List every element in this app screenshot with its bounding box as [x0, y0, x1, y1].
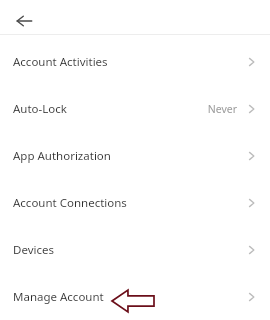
- staticText: Never: [207, 102, 237, 116]
- staticText: App Authorization: [13, 148, 111, 164]
- button[interactable]: App Authorization: [0, 132, 270, 179]
- staticText: Account Connections: [13, 195, 127, 211]
- button[interactable]: Account Connections: [0, 179, 270, 226]
- staticText: Account Activities: [13, 54, 108, 70]
- button[interactable]: Back: [6, 4, 42, 38]
- staticText: Devices: [13, 242, 54, 258]
- button[interactable]: Auto-Lock: [0, 85, 270, 132]
- staticText: Auto-Lock: [13, 101, 67, 117]
- button[interactable]: Manage Account: [0, 273, 270, 320]
- button[interactable]: Devices: [0, 226, 270, 273]
- staticText: Manage Account: [13, 289, 104, 305]
- button[interactable]: Account Activities: [0, 38, 270, 85]
